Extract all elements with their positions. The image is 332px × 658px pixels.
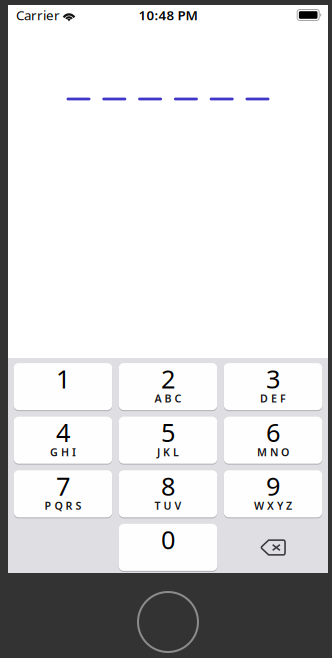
staticText: P Q R S bbox=[44, 499, 81, 513]
button[interactable]: 0 bbox=[119, 524, 217, 571]
button[interactable]: 2 bbox=[119, 363, 217, 410]
button[interactable]: 6 bbox=[224, 417, 322, 464]
staticText: T U V bbox=[154, 499, 181, 513]
staticText: 10:48 PM bbox=[138, 6, 197, 24]
staticText: 1 bbox=[56, 362, 70, 395]
staticText: M N O bbox=[257, 445, 289, 459]
button[interactable]: 5 bbox=[119, 417, 217, 464]
button[interactable]: Delete bbox=[224, 524, 322, 571]
staticText: G H I bbox=[50, 445, 76, 459]
staticText: 6 bbox=[266, 415, 280, 449]
button[interactable]: 4 bbox=[14, 417, 112, 464]
staticText: 9 bbox=[266, 469, 280, 503]
staticText: A B C bbox=[154, 391, 181, 406]
staticText: 8 bbox=[161, 469, 175, 503]
staticText: 5 bbox=[161, 415, 175, 449]
staticText: Carrier bbox=[16, 6, 60, 24]
staticText: D E F bbox=[260, 391, 286, 406]
staticText: 2 bbox=[161, 362, 175, 395]
button[interactable]: 3 bbox=[224, 363, 322, 410]
button[interactable]: 8 bbox=[119, 470, 217, 517]
staticText: J K L bbox=[157, 445, 179, 459]
button[interactable]: 1 bbox=[14, 363, 112, 410]
staticText: 0 bbox=[161, 523, 175, 556]
staticText: 7 bbox=[56, 469, 70, 503]
button[interactable]: 7 bbox=[14, 470, 112, 517]
staticText: 4 bbox=[56, 415, 70, 449]
staticText: 3 bbox=[266, 362, 280, 395]
button[interactable]: 9 bbox=[224, 470, 322, 517]
staticText: W X Y Z bbox=[254, 499, 292, 513]
